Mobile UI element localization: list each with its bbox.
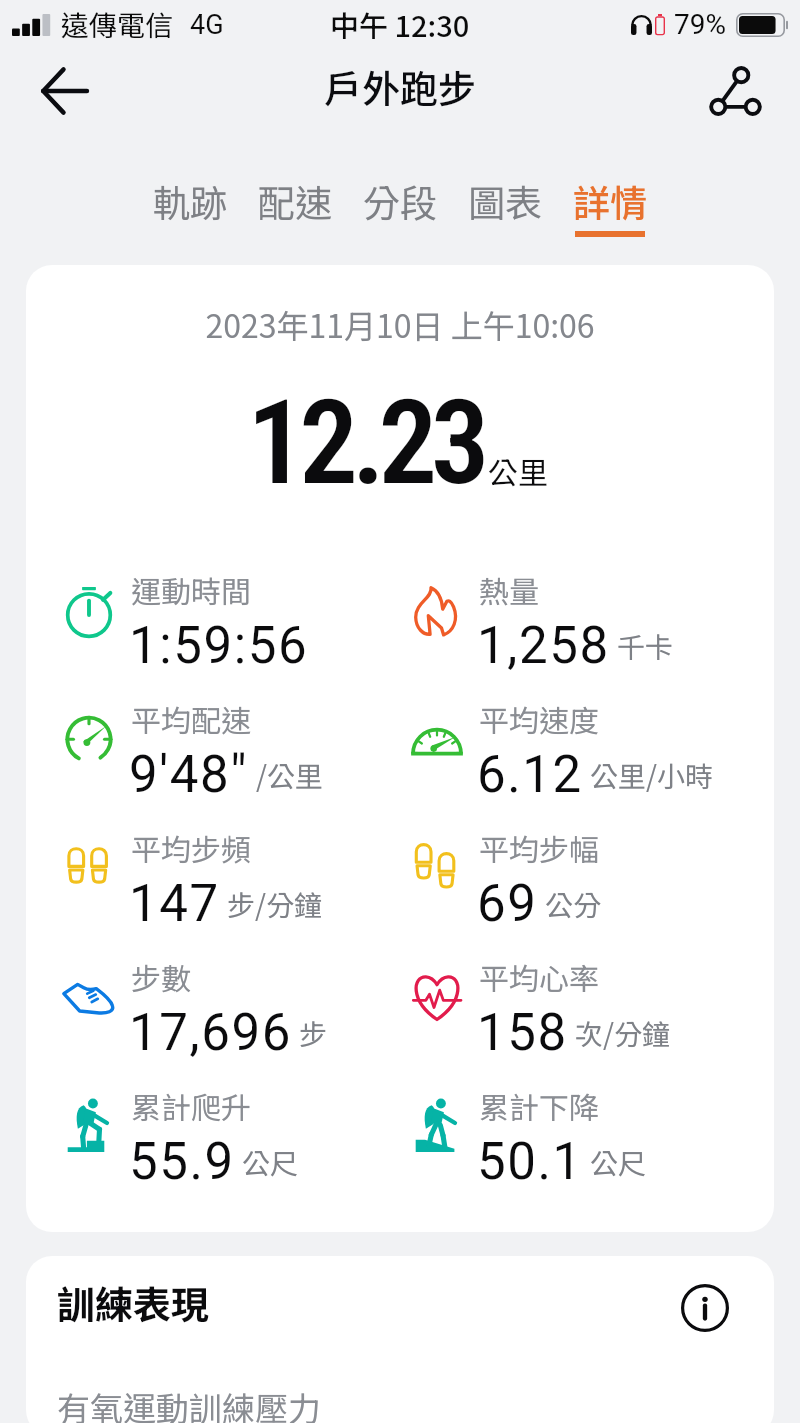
staticText: 步: [299, 1013, 328, 1054]
staticText: 12.23: [247, 374, 484, 511]
staticText: 遠傳電信: [61, 4, 174, 45]
staticText: 平均配速: [131, 697, 251, 740]
staticText: 公分: [545, 884, 602, 925]
staticText: 平均心率: [479, 955, 599, 998]
staticText: /公里: [256, 755, 323, 796]
staticText: 平均步幅: [479, 826, 599, 869]
staticText: 6.12: [477, 745, 583, 805]
staticText: 圖表: [468, 174, 542, 228]
staticText: 熱量: [479, 568, 539, 611]
staticText: 1:59:56: [129, 616, 309, 676]
staticText: 1,258: [477, 616, 610, 676]
button[interactable]: 累計下降: [374, 1084, 722, 1213]
staticText: 公里: [488, 449, 548, 492]
button[interactable]: Info: [665, 1268, 745, 1348]
staticText: 有氧運動訓練壓力: [57, 1383, 321, 1423]
staticText: 平均速度: [479, 697, 599, 740]
staticText: 55.9: [129, 1132, 235, 1192]
staticText: 158: [477, 1003, 568, 1063]
button[interactable]: 配速: [243, 144, 347, 240]
staticText: 50.1: [477, 1132, 583, 1192]
button[interactable]: 平均步頻: [26, 826, 374, 955]
staticText: 4G: [190, 9, 224, 41]
button[interactable]: 步數: [26, 955, 374, 1084]
staticText: 公里/小時: [590, 755, 713, 796]
button[interactable]: 平均配速: [26, 697, 374, 826]
button[interactable]: 平均步幅: [374, 826, 722, 955]
staticText: 平均步頻: [131, 826, 251, 869]
staticText: 次/分鐘: [575, 1013, 670, 1054]
staticText: 公尺: [590, 1142, 647, 1183]
button[interactable]: 詳情: [558, 144, 662, 240]
staticText: 公尺: [242, 1142, 299, 1183]
button[interactable]: 累計爬升: [26, 1084, 374, 1213]
staticText: 累計爬升: [131, 1084, 251, 1127]
button[interactable]: Back: [22, 49, 106, 133]
staticText: 訓練表現: [57, 1275, 210, 1330]
staticText: 軌跡: [153, 174, 227, 228]
button[interactable]: 熱量: [374, 568, 722, 697]
button[interactable]: Share: [693, 49, 777, 133]
button[interactable]: 運動時間: [26, 568, 374, 697]
button[interactable]: 平均心率: [374, 955, 722, 1084]
staticText: 累計下降: [479, 1084, 599, 1127]
staticText: 詳情: [573, 174, 647, 228]
staticText: 戶外跑步: [0, 59, 800, 114]
button[interactable]: 圖表: [453, 144, 557, 240]
staticText: 配速: [258, 174, 332, 228]
staticText: 17,696: [129, 1003, 292, 1063]
staticText: 步/分鐘: [227, 884, 322, 925]
staticText: 69: [477, 874, 538, 934]
staticText: 79%: [674, 8, 726, 41]
staticText: 千卡: [617, 626, 674, 667]
staticText: 2023年11月10日 上午10:06: [26, 301, 774, 347]
staticText: 分段: [363, 174, 437, 228]
staticText: 147: [129, 874, 220, 934]
staticText: 9'48": [129, 745, 249, 805]
staticText: 中午 12:30: [330, 3, 470, 45]
button[interactable]: 分段: [348, 144, 452, 240]
button[interactable]: 平均速度: [374, 697, 722, 826]
staticText: 步數: [131, 955, 191, 998]
button[interactable]: 軌跡: [138, 144, 242, 240]
staticText: 運動時間: [131, 568, 251, 611]
